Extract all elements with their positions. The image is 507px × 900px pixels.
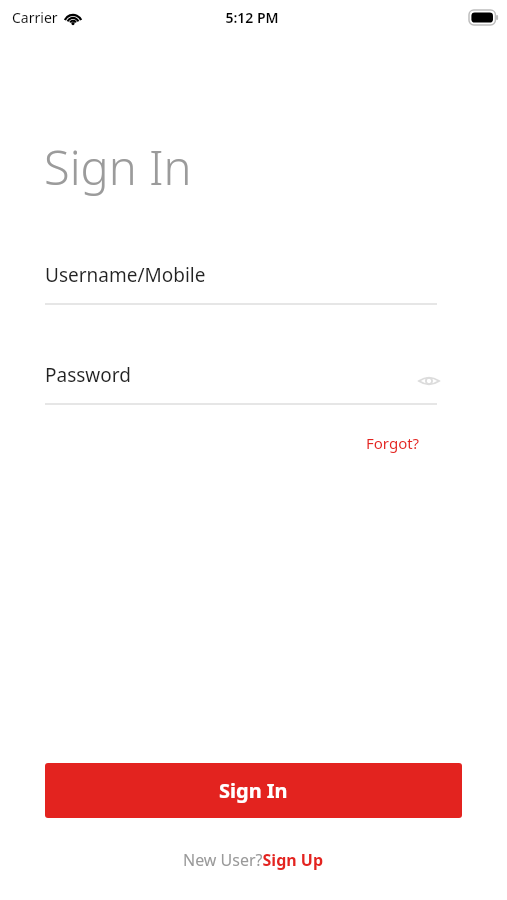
staticText: Password [45,362,131,388]
staticText: Forgot? [366,433,420,453]
button[interactable]: Username/Mobile [45,262,437,305]
button[interactable]: Sign In [45,763,462,818]
button[interactable]: New User?Sign Up [177,845,330,875]
staticText: New User?Sign Up [183,849,324,871]
button[interactable]: Forgot? [362,430,424,456]
staticText: 5:12 PM [225,8,279,27]
button[interactable]: Show password [415,367,443,395]
staticText: Carrier [12,8,58,27]
button[interactable]: Password [45,362,437,405]
staticText: Sign In [219,777,288,804]
staticText: Sign In [44,135,192,199]
staticText: Username/Mobile [45,262,206,288]
